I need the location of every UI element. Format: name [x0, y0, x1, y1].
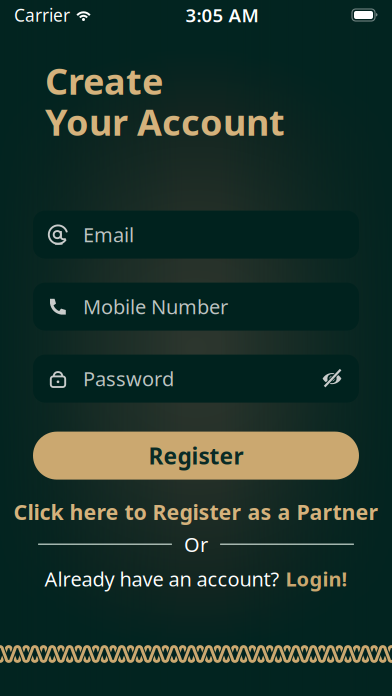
button[interactable]: Login!	[285, 565, 347, 592]
button[interactable]: Register	[33, 432, 359, 480]
staticText: Create	[45, 57, 163, 105]
staticText: Already have an account?	[44, 565, 279, 592]
staticText: Password	[83, 365, 174, 392]
staticText: Or	[184, 531, 208, 557]
staticText: Your Account	[45, 98, 285, 146]
button[interactable]: Click here to Register as a Partner	[0, 494, 392, 530]
staticText: Mobile Number	[83, 293, 228, 320]
staticText: Email	[83, 221, 134, 248]
staticText: Login!	[285, 565, 347, 592]
staticText: 3:05 AM	[185, 3, 258, 27]
button[interactable]: Email	[33, 211, 359, 259]
staticText: Carrier	[14, 3, 70, 26]
button[interactable]: Password	[33, 355, 359, 403]
staticText: Register	[148, 441, 243, 471]
button[interactable]: Mobile Number	[33, 283, 359, 331]
staticText: Click here to Register as a Partner	[13, 498, 378, 526]
